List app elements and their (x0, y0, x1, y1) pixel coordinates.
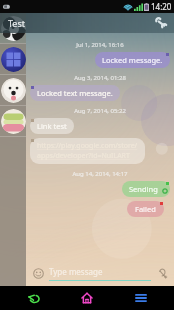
staticText: Jul 1, 2014, 16:16 (76, 41, 124, 49)
staticText: Sending (129, 184, 158, 194)
button[interactable]: Contact (0, 13, 26, 43)
staticText: Type message (49, 266, 103, 277)
button[interactable]: Emoji (31, 266, 45, 280)
button[interactable]: Contact (0, 75, 26, 105)
button[interactable]: Contact (0, 106, 26, 136)
button[interactable]: Failed (127, 201, 164, 217)
staticText: 14:20 (151, 1, 172, 12)
staticText: Aug 14, 2014, 14:17 (72, 170, 128, 178)
button[interactable]: Call (152, 14, 170, 32)
button[interactable]: Recent apps (121, 286, 161, 310)
button[interactable]: Attach (155, 266, 169, 280)
button[interactable]: Sending (122, 181, 170, 197)
button[interactable]: Home (67, 286, 107, 310)
button[interactable]: Contact (0, 44, 26, 74)
button[interactable]: Locked message. (95, 52, 170, 68)
button[interactable]: Back (14, 286, 54, 310)
staticText: Aug 7, 2014, 05:22 (74, 107, 126, 115)
button[interactable]: https://play.google.com/store/ apps/deve… (30, 138, 145, 164)
button[interactable]: Link test (30, 118, 74, 134)
staticText: Failed (135, 204, 156, 214)
button[interactable]: Locked text message. (30, 85, 120, 101)
staticText: Link test (37, 121, 67, 131)
button[interactable]: Type message (49, 266, 151, 281)
staticText: Locked text message. (37, 88, 113, 98)
staticText: Aug 3, 2014, 01:28 (74, 74, 126, 82)
staticText: https://play.google.com/store/ apps/deve… (37, 141, 138, 161)
staticText: Test (8, 17, 26, 29)
staticText: Locked message. (102, 55, 163, 65)
